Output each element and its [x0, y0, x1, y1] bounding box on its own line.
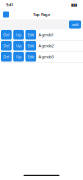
staticText: ▮▮▮	[71, 2, 77, 7]
button[interactable]: Up	[13, 41, 24, 51]
staticText: Del	[3, 43, 9, 48]
button[interactable]: Edit	[25, 52, 36, 62]
staticText: Del	[3, 32, 9, 37]
staticText: Agenda2	[39, 43, 54, 48]
staticText: Edit	[28, 54, 34, 59]
button[interactable]: Up	[13, 52, 24, 62]
button[interactable]: Edit	[25, 41, 36, 51]
staticText: Agenda1	[39, 32, 54, 37]
staticText: Edit	[28, 32, 34, 37]
button[interactable]: Del	[1, 41, 12, 51]
button[interactable]: add	[69, 20, 81, 28]
staticText: Up	[16, 32, 21, 37]
staticText: add	[72, 22, 78, 27]
button[interactable]: Menu	[3, 11, 9, 17]
button[interactable]: Up	[13, 30, 24, 39]
staticText: 9:41	[6, 2, 13, 7]
staticText: Up	[16, 54, 21, 59]
button[interactable]: Del	[1, 52, 12, 62]
staticText: Edit	[28, 43, 34, 48]
staticText: Del	[3, 54, 9, 59]
button[interactable]: Edit	[25, 30, 36, 39]
button[interactable]: Del	[1, 30, 12, 39]
staticText: Top Page	[33, 12, 50, 17]
staticText: Agenda3	[39, 54, 54, 59]
staticText: Up	[16, 43, 21, 48]
